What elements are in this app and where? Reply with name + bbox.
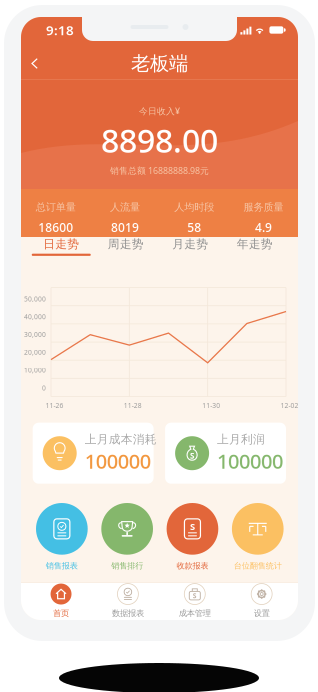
staticText: 年走势 (237, 237, 273, 251)
button[interactable]: 设置 (228, 582, 295, 620)
staticText: 40,000 (24, 312, 46, 321)
button[interactable]: S (167, 503, 218, 571)
staticText: 12-02 (280, 401, 298, 410)
button[interactable]: 销售排行 (101, 503, 153, 571)
staticText: 成本管理 (179, 608, 211, 618)
staticText: 今日收入¥ (139, 105, 180, 117)
staticText: 销售报表 (46, 561, 78, 571)
button[interactable]: 首页 (28, 582, 94, 620)
button[interactable]: 上月成本消耗 (33, 423, 154, 484)
staticText: 上月成本消耗 (85, 432, 157, 447)
staticText: 销售排行 (111, 561, 143, 571)
staticText: 9:18 (46, 21, 74, 39)
button[interactable]: 日走势 (29, 237, 93, 275)
staticText: 首页 (53, 608, 69, 618)
staticText: 20,000 (24, 348, 46, 357)
staticText: 0 (42, 383, 46, 392)
staticText: 服务质量 (243, 201, 283, 213)
staticText: 8019 (111, 219, 139, 235)
staticText: 18600 (38, 219, 73, 235)
button[interactable]: 销售报表 (36, 503, 88, 571)
staticText: 周走势 (108, 237, 144, 251)
staticText: S (193, 591, 197, 600)
staticText: 日走势 (43, 237, 79, 251)
staticText: 10,000 (24, 366, 46, 374)
button[interactable]: Back (21, 47, 50, 80)
staticText: 4.9 (255, 219, 272, 235)
button[interactable]: 年走势 (222, 237, 287, 275)
button[interactable]: 台位翻售统计 (232, 503, 284, 571)
staticText: 月走势 (172, 237, 208, 251)
staticText: 数据报表 (112, 608, 144, 618)
staticText: 100000 (217, 448, 283, 474)
button[interactable]: S (161, 582, 228, 620)
staticText: S (190, 520, 195, 533)
staticText: 台位翻售统计 (234, 561, 282, 571)
staticText: 设置 (254, 608, 270, 618)
button[interactable]: 周走势 (93, 237, 158, 275)
staticText: 人流量 (110, 201, 140, 213)
staticText: 销售总额 16888888.98元 (110, 164, 209, 176)
staticText: S (190, 450, 194, 461)
staticText: 总订单量 (36, 201, 76, 213)
staticText: 30,000 (24, 330, 46, 339)
staticText: 11-28 (124, 401, 142, 410)
staticText: 8898.00 (101, 119, 218, 161)
staticText: 50,000 (24, 294, 46, 303)
button[interactable]: 月走势 (158, 237, 222, 275)
staticText: 100000 (85, 448, 151, 474)
button[interactable]: 数据报表 (94, 582, 161, 620)
staticText: 11-30 (202, 401, 220, 410)
staticText: 上月利润 (217, 432, 265, 447)
button[interactable]: S (165, 423, 286, 484)
staticText: 58 (187, 219, 201, 235)
staticText: 人均时段 (174, 201, 214, 213)
staticText: 老板端 (131, 51, 188, 76)
staticText: 收款报表 (176, 561, 208, 571)
staticText: 11-26 (45, 401, 63, 410)
